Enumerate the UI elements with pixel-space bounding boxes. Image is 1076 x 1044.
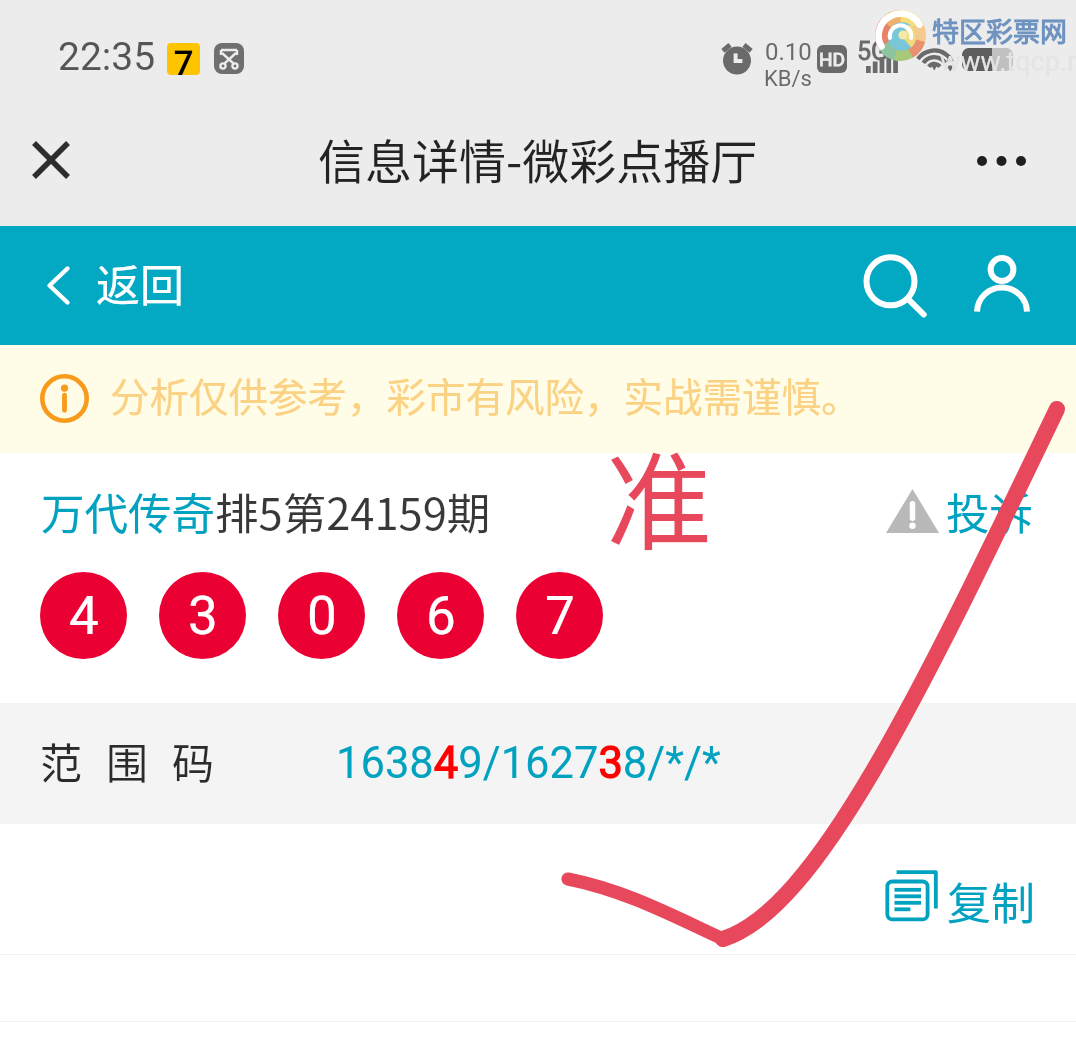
staticText: 特区彩票网 [932,11,1067,50]
button[interactable]: More options [956,126,1046,196]
staticText: 范 [40,730,83,791]
staticText: 7 [174,43,194,75]
staticText: 3 [188,585,218,647]
staticText: 4 [69,585,99,647]
button[interactable]: Profile [972,244,1056,328]
staticText: 0.10 [765,38,812,66]
staticText: 22:35 [58,34,156,80]
staticText: 复制 [947,869,1035,933]
staticText: 投诉 [946,480,1033,543]
button[interactable]: Search [861,243,947,329]
button[interactable]: 3 [159,572,246,659]
staticText: 5G [857,37,889,66]
staticText: KB/s [764,66,812,92]
staticText: 163849/162738/*/* [336,738,721,789]
button[interactable]: 投诉 [885,480,1033,543]
button[interactable]: Close [14,123,88,197]
button[interactable]: 6 [397,572,484,659]
button[interactable]: 返回 [0,226,208,345]
button[interactable]: 0 [278,572,365,659]
button[interactable]: 7 [516,572,603,659]
button[interactable]: 复制 [886,869,1035,933]
staticText: HD [819,48,846,70]
staticText: 码 [172,730,215,791]
staticText: 分析仅供参考，彩市有风险，实战需谨慎。 [110,366,861,423]
staticText: www.tqcp.net [940,46,1076,78]
staticText: 0 [307,585,337,647]
staticText: 准 [606,418,712,571]
staticText: 围 [106,730,149,791]
staticText: 7 [545,585,575,647]
button[interactable]: 4 [40,572,127,659]
staticText: 万代传奇排5第24159期 [41,480,491,543]
staticText: 返回 [96,251,184,315]
staticText: 6 [426,585,456,647]
staticText: 信息详情-微彩点播厅 [318,124,758,192]
